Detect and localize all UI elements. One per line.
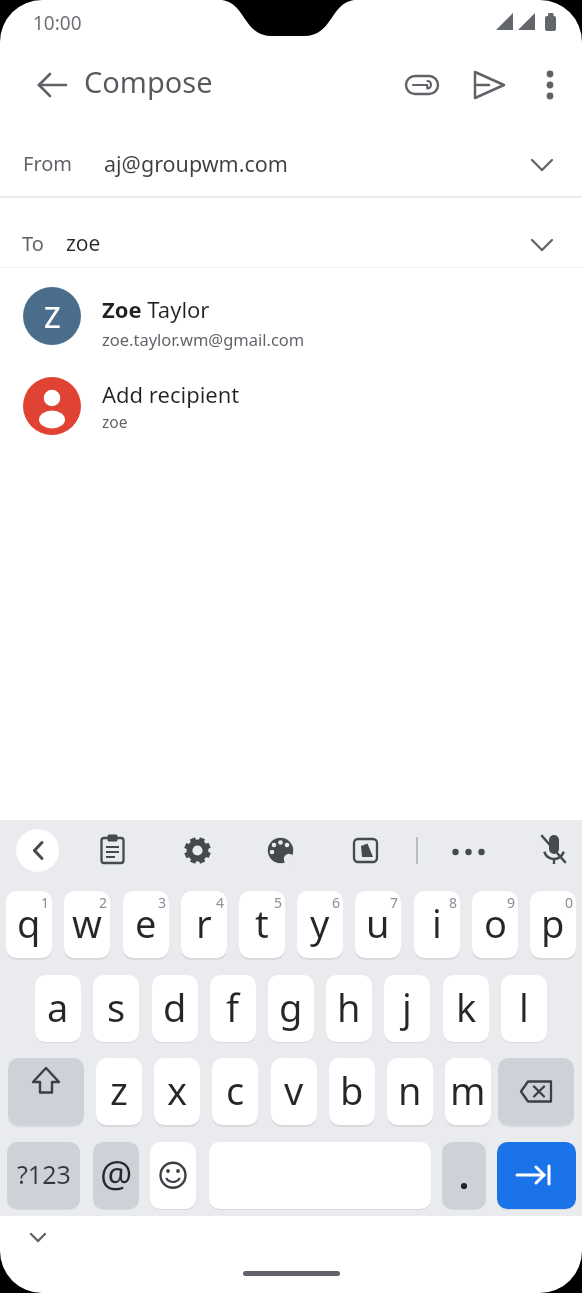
staticText: j [402, 981, 412, 1033]
staticText: m [450, 1064, 486, 1116]
button[interactable]: r [181, 891, 227, 958]
staticText: f [226, 981, 240, 1033]
button[interactable]: k [443, 975, 489, 1042]
button[interactable]: c [212, 1058, 258, 1125]
staticText: o [484, 897, 507, 949]
staticText: k [456, 981, 477, 1033]
staticText: 9 [507, 893, 516, 912]
staticText: Compose [84, 62, 213, 101]
staticText: zoe.taylor.wm@gmail.com [102, 328, 305, 350]
staticText: b [340, 1064, 364, 1116]
button[interactable] [528, 63, 572, 107]
staticText: zoe [66, 229, 101, 258]
button[interactable]: l [501, 975, 547, 1042]
button[interactable]: z [96, 1058, 142, 1125]
staticText: d [163, 981, 187, 1033]
button[interactable]: ?123 [7, 1142, 80, 1209]
button[interactable]: w [64, 891, 110, 958]
staticText: 6 [332, 893, 341, 912]
staticText: s [107, 981, 126, 1033]
staticText: c [226, 1064, 245, 1116]
button[interactable] [498, 1058, 574, 1125]
button[interactable]: Add recipient [0, 366, 582, 446]
button[interactable] [150, 1142, 196, 1209]
button[interactable] [447, 829, 490, 872]
staticText: 0 [565, 893, 574, 912]
staticText: v [284, 1064, 304, 1116]
button[interactable]: From [0, 131, 582, 196]
staticText: n [398, 1064, 422, 1116]
button[interactable]: h [326, 975, 372, 1042]
button[interactable]: m [445, 1058, 491, 1125]
button[interactable]: Z [0, 277, 582, 356]
staticText: 8 [449, 893, 458, 912]
staticText: ?123 [17, 1157, 71, 1191]
button[interactable] [532, 829, 575, 872]
button[interactable]: t [239, 891, 285, 958]
button[interactable]: a [35, 975, 81, 1042]
button[interactable]: u [355, 891, 401, 958]
staticText: Zoe Taylor [102, 294, 210, 324]
button[interactable]: e [123, 891, 169, 958]
button[interactable] [400, 63, 444, 107]
button[interactable]: To [0, 198, 582, 267]
staticText: zoe [102, 411, 128, 432]
button[interactable]: q [6, 891, 52, 958]
staticText: Add recipient [102, 379, 240, 409]
staticText: x [167, 1064, 188, 1116]
button[interactable]: x [154, 1058, 200, 1125]
button[interactable] [176, 829, 219, 872]
button[interactable]: y [297, 891, 343, 958]
button[interactable]: f [210, 975, 256, 1042]
staticText: i [432, 897, 442, 949]
staticText: 4 [216, 893, 225, 912]
staticText: To [22, 230, 44, 257]
button[interactable] [259, 829, 302, 872]
button[interactable]: v [271, 1058, 317, 1125]
staticText: h [337, 981, 361, 1033]
staticText: y [310, 897, 330, 949]
staticText: u [366, 897, 390, 949]
staticText: q [17, 897, 41, 949]
staticText: t [255, 897, 269, 949]
button[interactable] [91, 829, 134, 872]
staticText: From [23, 150, 73, 177]
button[interactable]: @ [93, 1142, 139, 1209]
button[interactable]: d [152, 975, 198, 1042]
button[interactable] [8, 1058, 84, 1125]
staticText: 5 [274, 893, 283, 912]
staticText: p [541, 897, 565, 949]
button[interactable] [16, 1222, 60, 1254]
button[interactable] [344, 829, 387, 872]
button[interactable] [30, 63, 74, 107]
staticText: 10:00 [33, 10, 82, 36]
staticText: @ [100, 1149, 133, 1198]
button[interactable] [497, 1142, 576, 1209]
button[interactable]: p [530, 891, 576, 958]
staticText: l [519, 981, 529, 1033]
staticText: 1 [41, 893, 50, 912]
button[interactable]: s [93, 975, 139, 1042]
button[interactable]: n [387, 1058, 433, 1125]
staticText: 2 [99, 893, 108, 912]
button[interactable] [16, 829, 59, 872]
button[interactable] [442, 1142, 486, 1209]
button[interactable]: g [268, 975, 314, 1042]
button[interactable]: j [384, 975, 430, 1042]
staticText: e [135, 897, 157, 949]
staticText: z [110, 1064, 128, 1116]
button[interactable]: b [329, 1058, 375, 1125]
staticText: w [72, 897, 102, 949]
staticText: r [196, 897, 212, 949]
button[interactable]: i [414, 891, 460, 958]
staticText: aj@groupwm.com [104, 149, 288, 178]
staticText: 3 [158, 893, 167, 912]
staticText: 7 [390, 893, 399, 912]
button[interactable] [467, 63, 511, 107]
button[interactable]: o [472, 891, 518, 958]
staticText: a [47, 981, 69, 1033]
staticText: Z [44, 297, 61, 336]
staticText: g [279, 981, 303, 1033]
